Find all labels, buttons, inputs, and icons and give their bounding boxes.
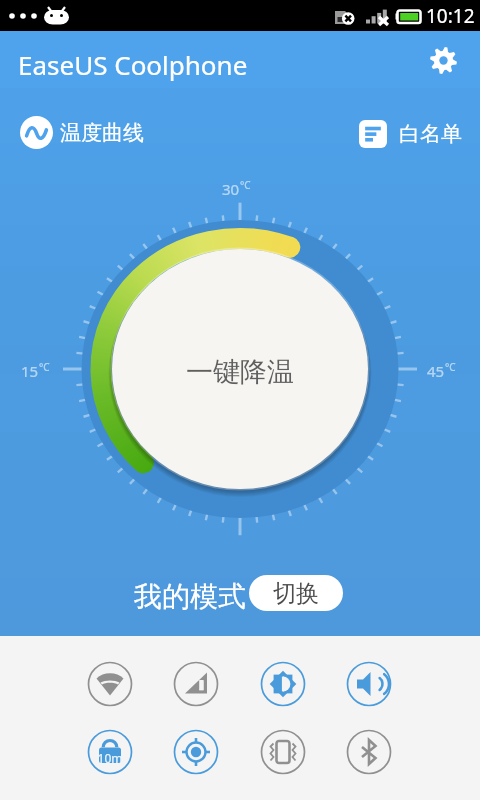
staticText: °C xyxy=(39,360,50,374)
staticText: 我的模式 xyxy=(134,579,246,614)
button[interactable]: Settings xyxy=(420,37,466,83)
staticText: °C xyxy=(240,178,251,192)
button[interactable]: Bluetooth xyxy=(345,728,393,776)
staticText: 10m xyxy=(86,750,134,766)
button[interactable]: Vibrate xyxy=(259,728,307,776)
staticText: 白名单 xyxy=(399,121,462,147)
staticText: 10:12 xyxy=(426,3,475,29)
button[interactable]: Screen timeout xyxy=(86,728,134,776)
staticText: °C xyxy=(445,360,456,374)
staticText: 30 xyxy=(222,179,240,199)
staticText: 切换 xyxy=(273,579,319,608)
button[interactable]: 切换 xyxy=(249,575,343,611)
button[interactable]: Volume xyxy=(345,660,393,708)
staticText: EaseUS Coolphone xyxy=(18,47,248,82)
button[interactable]: Brightness xyxy=(259,660,307,708)
staticText: 温度曲线 xyxy=(60,120,144,146)
staticText: 一键降温 xyxy=(0,355,480,389)
button[interactable]: Wi-Fi xyxy=(86,660,134,708)
button[interactable]: Location xyxy=(172,728,220,776)
button[interactable]: 白名单 xyxy=(355,116,466,152)
button[interactable]: 温度曲线 xyxy=(16,112,148,153)
staticText: 15 xyxy=(21,361,39,381)
button[interactable]: Mobile data xyxy=(172,660,220,708)
staticText: 45 xyxy=(427,361,445,381)
